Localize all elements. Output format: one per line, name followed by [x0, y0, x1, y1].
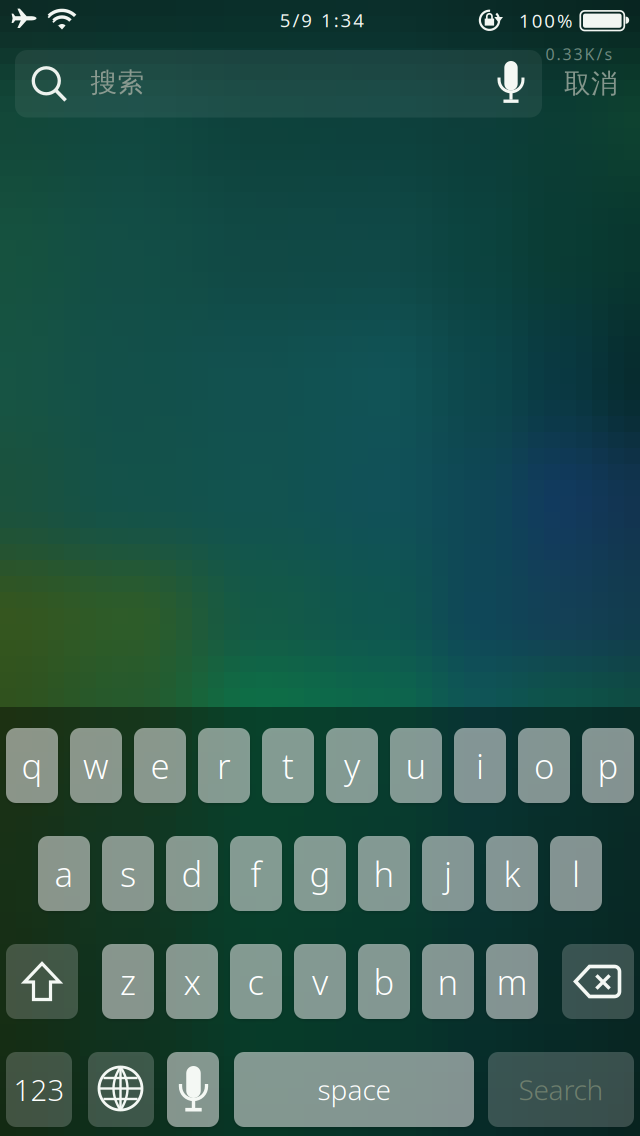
staticText: i — [476, 742, 484, 788]
button[interactable]: c — [230, 944, 282, 1019]
button[interactable]: h — [358, 836, 410, 911]
button[interactable]: t — [262, 728, 314, 803]
button[interactable]: g — [294, 836, 346, 911]
button[interactable]: l — [550, 836, 602, 911]
button[interactable]: Delete — [562, 944, 634, 1019]
button[interactable]: k — [486, 836, 538, 911]
staticText: h — [373, 850, 394, 896]
button[interactable]: u — [390, 728, 442, 803]
staticText: w — [83, 742, 109, 788]
button[interactable]: Shift — [6, 944, 78, 1019]
button[interactable]: space — [234, 1052, 474, 1127]
staticText: e — [150, 742, 169, 788]
staticText: d — [181, 850, 202, 896]
button[interactable]: w — [70, 728, 122, 803]
button[interactable]: a — [38, 836, 90, 911]
staticText: s — [120, 850, 136, 896]
button[interactable]: d — [166, 836, 218, 911]
button[interactable]: f — [230, 836, 282, 911]
button[interactable]: Search — [488, 1052, 634, 1127]
staticText: r — [217, 742, 231, 788]
staticText: l — [572, 850, 580, 896]
staticText: c — [247, 958, 264, 1004]
staticText: 5/9 1:34 — [280, 8, 364, 32]
button[interactable]: y — [326, 728, 378, 803]
staticText: 取消 — [564, 67, 618, 100]
button[interactable]: 123 — [6, 1052, 72, 1127]
button[interactable]: j — [422, 836, 474, 911]
staticText: o — [534, 742, 554, 788]
button[interactable]: n — [422, 944, 474, 1019]
button[interactable]: s — [102, 836, 154, 911]
staticText: space — [317, 1071, 390, 1108]
staticText: m — [496, 958, 527, 1004]
staticText: k — [503, 850, 520, 896]
button[interactable]: p — [582, 728, 634, 803]
button[interactable]: q — [6, 728, 58, 803]
staticText: p — [597, 742, 618, 788]
staticText: y — [344, 742, 360, 788]
staticText: a — [54, 850, 73, 896]
staticText: v — [312, 958, 328, 1004]
staticText: u — [405, 742, 426, 788]
staticText: x — [183, 958, 200, 1004]
button[interactable]: Voice search — [486, 56, 536, 112]
staticText: j — [444, 850, 452, 896]
staticText: q — [21, 742, 42, 788]
button[interactable]: Next keyboard — [88, 1052, 154, 1127]
button[interactable]: v — [294, 944, 346, 1019]
button[interactable]: o — [518, 728, 570, 803]
staticText: n — [437, 958, 458, 1004]
button[interactable]: Dictate — [167, 1052, 219, 1127]
button[interactable]: z — [102, 944, 154, 1019]
button[interactable]: 取消 — [564, 67, 618, 100]
button[interactable]: r — [198, 728, 250, 803]
staticText: 搜索 — [90, 66, 144, 99]
staticText: z — [120, 958, 136, 1004]
button[interactable]: m — [486, 944, 538, 1019]
button[interactable]: e — [134, 728, 186, 803]
staticText: f — [250, 850, 261, 896]
button[interactable]: 搜索 — [15, 50, 542, 117]
staticText: g — [309, 850, 330, 896]
staticText: 100% — [519, 8, 573, 33]
staticText: 123 — [13, 1070, 64, 1109]
button[interactable]: x — [166, 944, 218, 1019]
staticText: 0.33K/s — [545, 43, 612, 65]
staticText: Search — [518, 1071, 603, 1108]
staticText: b — [373, 958, 394, 1004]
staticText: t — [282, 742, 294, 788]
button[interactable]: b — [358, 944, 410, 1019]
button[interactable]: i — [454, 728, 506, 803]
